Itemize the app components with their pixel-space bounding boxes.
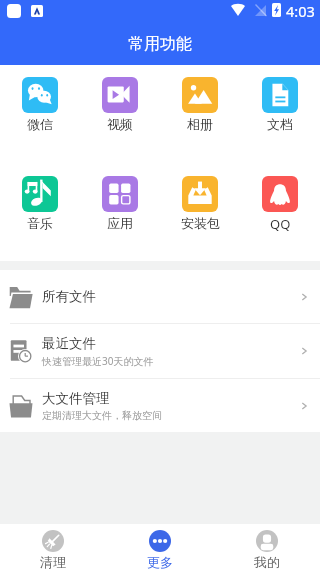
staticText: 最近文件 (42, 335, 96, 352)
other: Mine (256, 530, 278, 552)
button[interactable]: 应用 (80, 65, 160, 231)
staticText: QQ (270, 215, 291, 233)
button[interactable]: 音乐 (0, 65, 80, 231)
button[interactable]: 大文件管理 (0, 379, 320, 432)
button[interactable]: 安装包 (160, 65, 240, 231)
other: More (149, 530, 171, 552)
staticText: 大文件管理 (42, 390, 110, 407)
staticText: 安装包 (181, 215, 220, 231)
staticText: 应用 (107, 215, 133, 231)
staticText: 我的 (254, 554, 280, 570)
button[interactable]: 最近文件 (0, 324, 320, 378)
staticText: 微信 (27, 116, 53, 132)
button[interactable]: More (106, 524, 213, 572)
staticText: 文档 (267, 116, 293, 132)
button[interactable]: 视频 (80, 65, 160, 132)
button[interactable]: 文档 (240, 65, 320, 132)
staticText: 清理 (40, 554, 66, 570)
staticText: 相册 (187, 116, 213, 132)
staticText: 常用功能 (128, 34, 192, 54)
other: Clean (42, 530, 64, 552)
staticText: 快速管理最近30天的文件 (42, 354, 154, 368)
staticText: 音乐 (27, 215, 53, 231)
staticText: 4:03 (286, 1, 315, 21)
staticText: 定期清理大文件，释放空间 (42, 409, 162, 422)
button[interactable]: Clean (0, 524, 106, 572)
staticText: 所有文件 (42, 288, 96, 305)
staticText: 视频 (107, 116, 133, 132)
button[interactable]: 微信 (0, 65, 80, 132)
button[interactable]: 所有文件 (0, 270, 320, 323)
button[interactable]: 相册 (160, 65, 240, 132)
button[interactable]: QQ (240, 65, 320, 233)
button[interactable]: Mine (213, 524, 320, 572)
staticText: 更多 (147, 554, 173, 570)
